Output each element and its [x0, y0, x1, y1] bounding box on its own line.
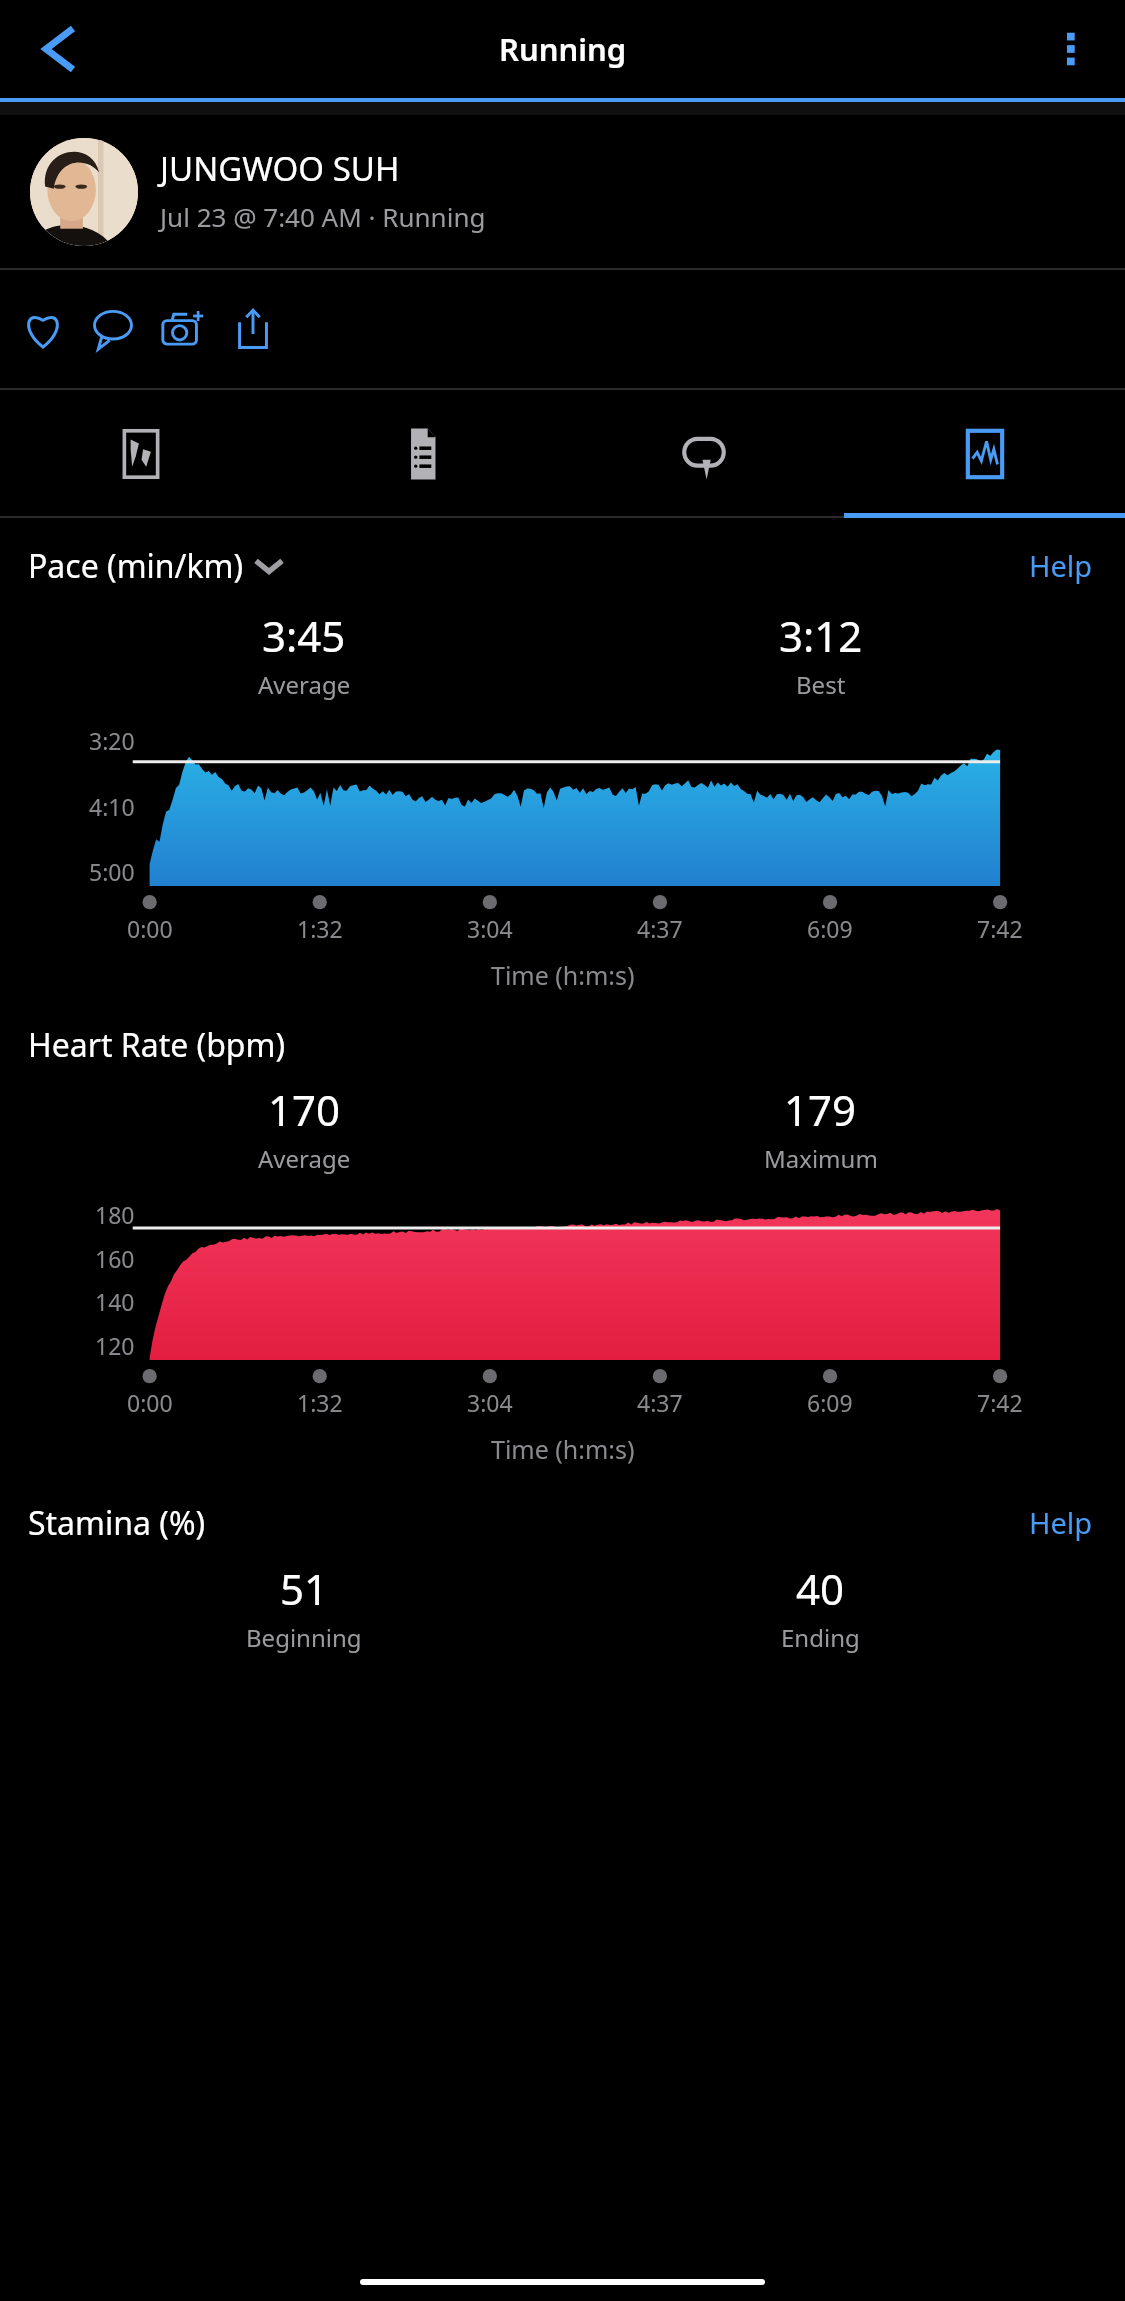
staticText: 40 [796, 1560, 845, 1617]
button[interactable]: Add photo [148, 294, 218, 364]
staticText: 1:32 [297, 913, 343, 944]
button[interactable]: Details [282, 390, 563, 518]
button[interactable]: Pace (min/km) [28, 544, 282, 588]
staticText: Stamina (%) [28, 1501, 206, 1545]
staticText: 180 [95, 1199, 135, 1230]
button[interactable]: Charts [844, 390, 1125, 518]
staticText: 4:37 [637, 1387, 683, 1418]
staticText: Average [258, 668, 351, 701]
button[interactable]: Help [1021, 538, 1101, 593]
staticText: Running [499, 28, 627, 70]
staticText: Pace (min/km) [28, 544, 244, 588]
button[interactable]: Laps [563, 390, 844, 518]
staticText: 6:09 [807, 1387, 853, 1418]
staticText: 4:37 [637, 913, 683, 944]
staticText: Best [796, 668, 846, 701]
staticText: 7:42 [977, 913, 1023, 944]
staticText: 120 [95, 1330, 135, 1361]
staticText: 4:10 [89, 791, 135, 822]
button[interactable]: More options [1023, 3, 1115, 95]
staticText: 3:20 [89, 725, 135, 756]
staticText: 179 [784, 1081, 857, 1138]
staticText: 51 [280, 1560, 329, 1617]
button[interactable]: JUNGWOO SUH [0, 115, 1125, 268]
staticText: 3:12 [779, 607, 863, 664]
staticText: Time (h:m:s) [491, 958, 635, 992]
staticText: 3:04 [467, 913, 513, 944]
staticText: 0:00 [127, 1387, 173, 1418]
button[interactable]: Map [0, 390, 282, 518]
staticText: 1:32 [297, 1387, 343, 1418]
staticText: 7:42 [977, 1387, 1023, 1418]
staticText: 6:09 [807, 913, 853, 944]
staticText: Time (h:m:s) [491, 1432, 635, 1466]
staticText: Ending [781, 1621, 860, 1654]
staticText: 170 [268, 1081, 341, 1138]
button[interactable]: Comment [78, 294, 148, 364]
button[interactable]: Help [1021, 1495, 1101, 1550]
staticText: Help [1029, 1503, 1093, 1542]
staticText: Beginning [246, 1621, 362, 1654]
staticText: JUNGWOO SUH [160, 146, 400, 191]
button[interactable]: Back [4, 3, 96, 95]
button[interactable]: Stamina (%) [28, 1501, 206, 1545]
button[interactable]: Like [8, 294, 78, 364]
staticText: Maximum [764, 1142, 878, 1175]
staticText: 5:00 [89, 856, 135, 887]
staticText: 140 [95, 1286, 135, 1317]
button[interactable]: Heart Rate (bpm) [28, 1023, 286, 1067]
staticText: 3:04 [467, 1387, 513, 1418]
staticText: 3:45 [262, 607, 346, 664]
button[interactable]: Share [218, 294, 288, 364]
staticText: Heart Rate (bpm) [28, 1023, 286, 1067]
staticText: 160 [95, 1243, 135, 1274]
staticText: Average [258, 1142, 351, 1175]
staticText: Jul 23 @ 7:40 AM · Running [160, 199, 486, 234]
staticText: 0:00 [127, 913, 173, 944]
staticText: Help [1029, 546, 1093, 585]
